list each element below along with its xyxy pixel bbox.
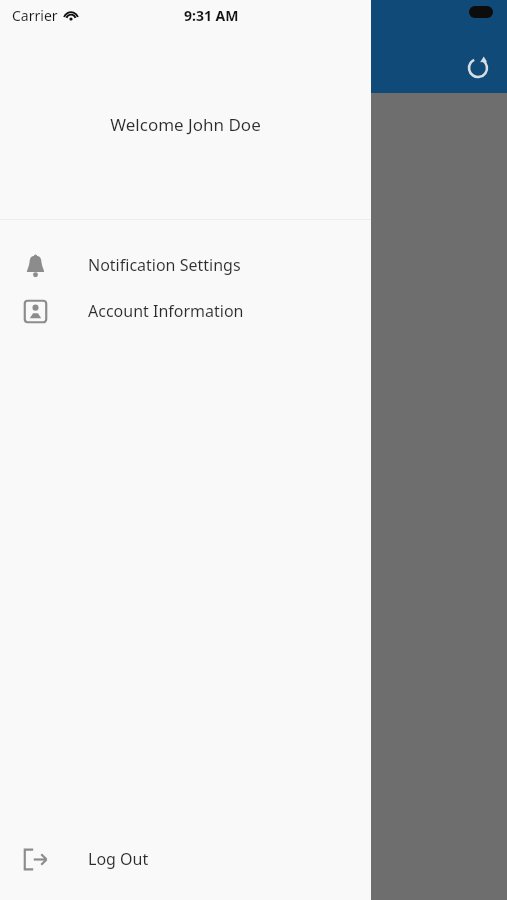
- staticText: Account Information: [88, 300, 244, 322]
- button[interactable]: Log Out: [0, 836, 371, 882]
- button[interactable]: Refresh: [463, 53, 493, 83]
- staticText: Notification Settings: [88, 254, 241, 276]
- button[interactable]: Account Information: [0, 288, 371, 334]
- button[interactable]: Notification Settings: [0, 242, 371, 288]
- staticText: Carrier: [12, 6, 58, 25]
- staticText: 9:31 AM: [184, 6, 239, 25]
- staticText: Log Out: [88, 848, 149, 870]
- staticText: Welcome John Doe: [110, 113, 261, 136]
